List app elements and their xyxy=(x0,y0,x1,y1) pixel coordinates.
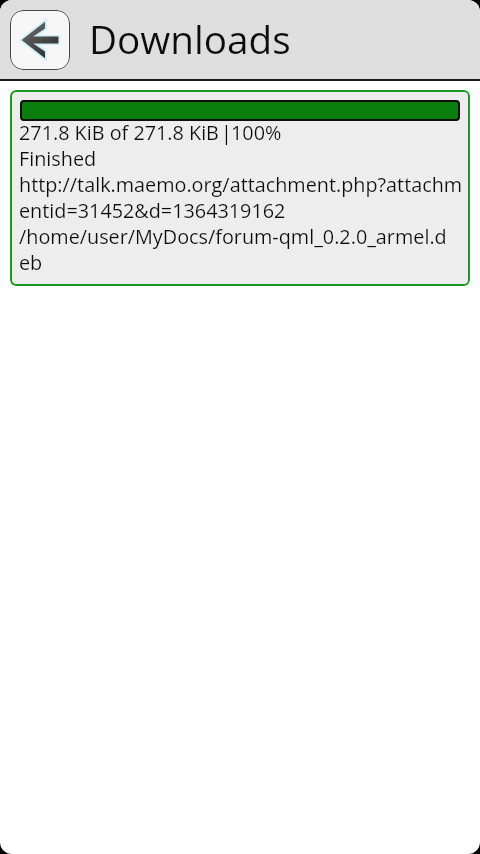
staticText: | xyxy=(221,119,232,145)
button[interactable]: 271.8 KiB of 271.8 KiB xyxy=(10,90,470,286)
staticText: entid=31452&d=1364319162 xyxy=(19,197,286,223)
button[interactable]: Back xyxy=(10,10,70,70)
staticText: Downloads xyxy=(89,13,291,66)
staticText: http://talk.maemo.org/attachment.php?att… xyxy=(19,171,463,197)
staticText: /home/user/MyDocs/forum-qml_0.2.0_armel.… xyxy=(19,223,447,249)
staticText: eb xyxy=(19,249,43,275)
staticText: Finished xyxy=(19,145,97,171)
staticText: 271.8 KiB of 271.8 KiB xyxy=(19,119,219,145)
staticText: 100% xyxy=(231,119,282,145)
